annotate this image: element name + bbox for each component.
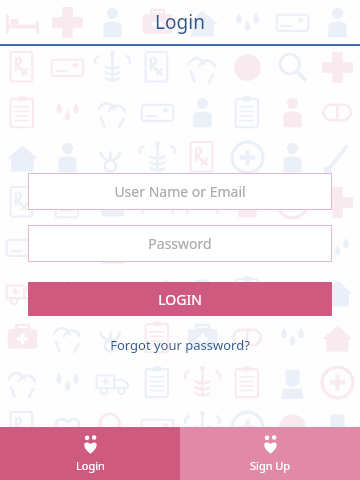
staticText: Password [148,234,212,253]
staticText: Login [155,9,205,35]
staticText: Forgot your password? [110,336,250,354]
staticText: User Name or Email [114,182,246,201]
button[interactable]: Login [0,427,180,480]
staticText: Login [76,458,105,473]
button[interactable]: Forgot your password? [100,333,260,357]
button[interactable]: Sign Up [180,427,360,480]
button[interactable]: User Name or Email [28,173,332,210]
button[interactable]: Password [28,225,332,262]
staticText: Sign Up [250,458,291,473]
staticText: LOGIN [158,290,202,309]
button[interactable]: LOGIN [28,282,332,316]
